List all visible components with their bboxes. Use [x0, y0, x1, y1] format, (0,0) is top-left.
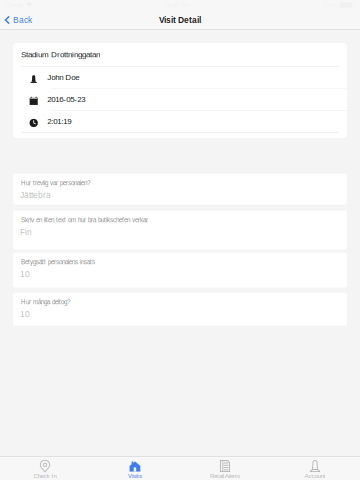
button[interactable]: Retail Alerts — [180, 456, 270, 480]
staticText: 2:01:19 — [47, 117, 71, 126]
staticText: Hur trevlig var personalen? — [21, 179, 90, 186]
button[interactable]: Back — [0, 10, 40, 30]
staticText: Fin — [20, 227, 32, 237]
button[interactable]: Check In — [0, 456, 90, 480]
staticText: Skriv en liten text om hur bra butiksche… — [21, 216, 148, 223]
button[interactable]: Account — [270, 456, 360, 480]
button[interactable]: Visits — [90, 456, 180, 480]
staticText: Jättebra — [20, 190, 51, 200]
staticText: Check In — [33, 472, 56, 479]
staticText: Back — [13, 15, 32, 25]
staticText: Retail Alerts — [210, 472, 240, 479]
staticText: Hur många deltog? — [21, 298, 70, 305]
staticText: Visits — [128, 472, 142, 479]
staticText: Stadium Drottninggatan — [21, 50, 100, 59]
staticText: John Doe — [47, 73, 79, 82]
staticText: 10 — [20, 309, 30, 319]
staticText: 2016-05-23 — [47, 95, 85, 104]
staticText: 10 — [20, 269, 30, 279]
staticText: Account — [304, 472, 325, 479]
staticText: Visit Detail — [159, 15, 201, 25]
staticText: Betygsätt personalens insats — [21, 258, 95, 265]
